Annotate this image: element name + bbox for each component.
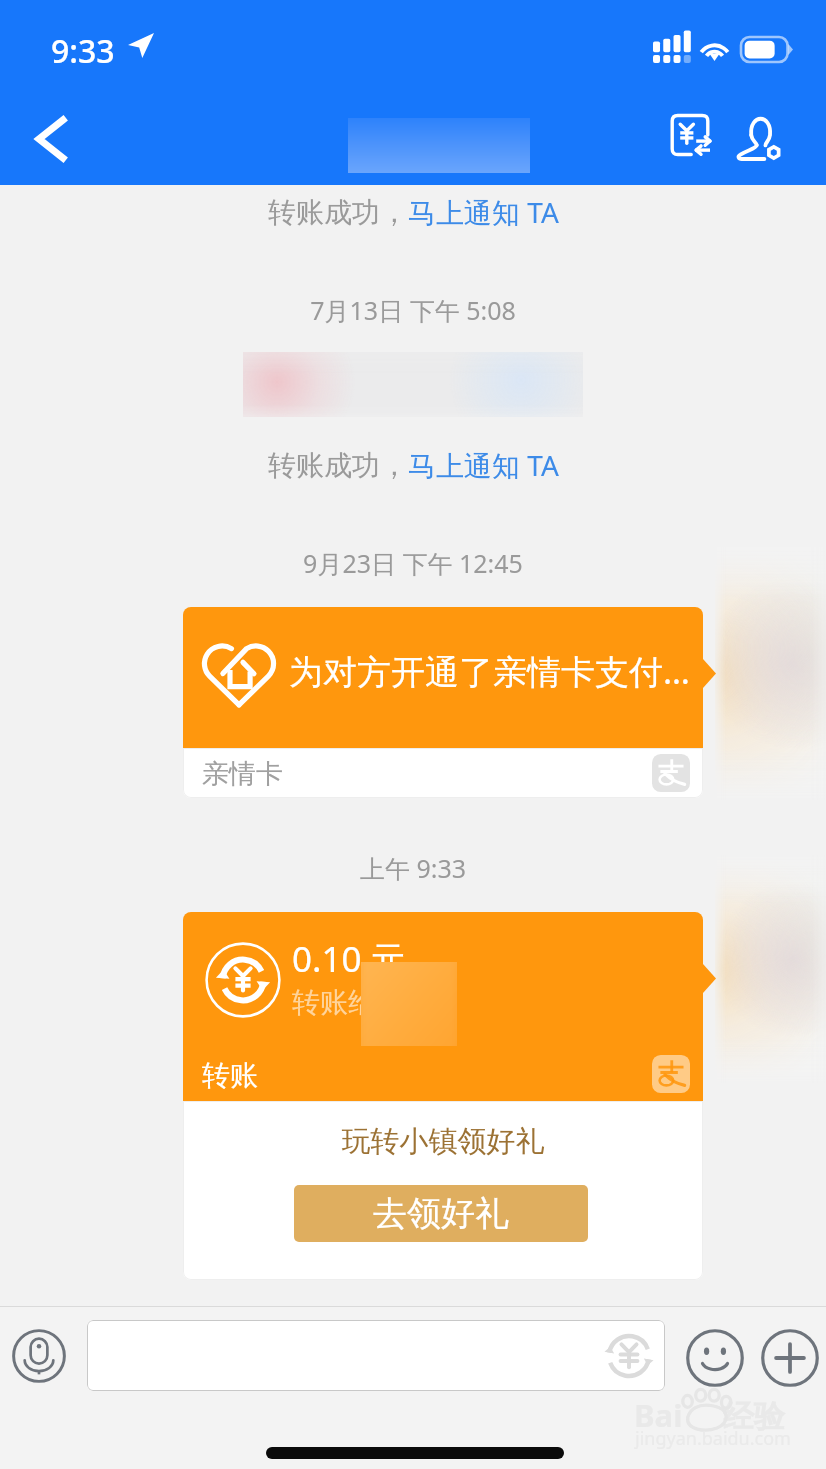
button[interactable]: 去领好礼	[294, 1185, 588, 1242]
button[interactable]: 马上通知 TA	[408, 446, 559, 484]
staticText: 马上通知 TA	[408, 193, 559, 231]
button[interactable]	[87, 1320, 665, 1391]
button[interactable]: 为对方开通了亲情卡支付…	[183, 607, 703, 748]
staticText: jingyan.baidu.com	[635, 1426, 791, 1451]
staticText: 0.10 元	[292, 935, 406, 983]
staticText: 转账成功，	[268, 195, 408, 230]
staticText: 转账给	[292, 985, 376, 1020]
button[interactable]: Bills	[650, 92, 730, 185]
staticText: 7月13日 下午 5:08	[0, 293, 826, 327]
staticText: 9月23日 下午 12:45	[0, 546, 826, 580]
staticText: 转账	[202, 1058, 258, 1093]
button[interactable]: Contact settings	[714, 92, 794, 185]
button[interactable]: Emoji	[679, 1322, 751, 1394]
staticText: 亲情卡	[202, 757, 283, 791]
staticText: 转账成功，	[268, 448, 408, 483]
staticText: 上午 9:33	[0, 851, 826, 885]
staticText: 马上通知 TA	[408, 446, 559, 484]
button[interactable]: More	[754, 1322, 826, 1394]
staticText: Bai 经验	[634, 1394, 785, 1436]
staticText: 9:33	[51, 29, 115, 73]
button[interactable]: 亲情卡	[183, 748, 703, 798]
button[interactable]: Voice message	[4, 1321, 74, 1391]
button[interactable]: Back	[8, 92, 94, 185]
staticText: 玩转小镇领好礼	[183, 1123, 703, 1160]
button[interactable]: 马上通知 TA	[408, 193, 559, 231]
staticText: 为对方开通了亲情卡支付…	[289, 648, 690, 694]
staticText: 去领好礼	[373, 1192, 509, 1235]
button[interactable]: 0.10 元	[183, 912, 703, 1101]
